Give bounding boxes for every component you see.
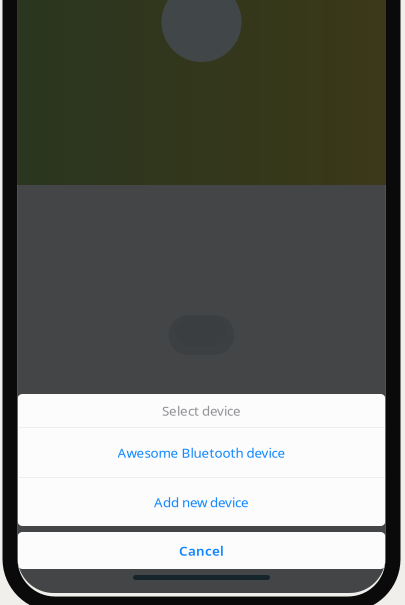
staticText: Awesome Bluetooth device [117, 444, 285, 461]
button[interactable]: Add new device [17, 478, 385, 526]
button[interactable]: Cancel [17, 532, 385, 569]
button[interactable]: Awesome Bluetooth device [17, 428, 385, 477]
staticText: Add new device [154, 493, 249, 511]
staticText: Cancel [179, 542, 224, 559]
staticText: Select device [162, 402, 241, 419]
